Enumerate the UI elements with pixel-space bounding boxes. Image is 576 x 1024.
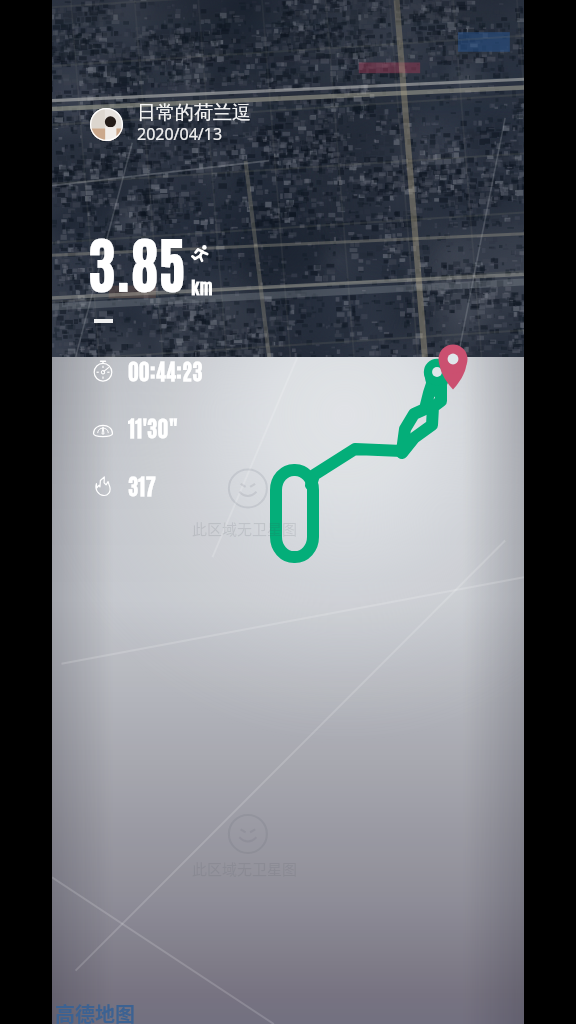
- button[interactable]: Calories: [92, 469, 156, 501]
- staticText: 高德地图: [55, 999, 135, 1024]
- other: Running: [190, 244, 210, 264]
- staticText: km: [191, 274, 213, 297]
- staticText: 00:44:23: [128, 356, 203, 384]
- staticText: 3.85: [88, 223, 186, 299]
- button[interactable]: Pace: [92, 411, 179, 443]
- staticText: 日常的荷兰逗: [137, 101, 251, 125]
- button[interactable]: 日常的荷兰逗: [90, 101, 251, 147]
- staticText: 317: [128, 471, 156, 499]
- staticText: 此区域无卫星图: [192, 858, 298, 880]
- staticText: 2020/04/13: [137, 123, 223, 145]
- staticText: 此区域无卫星图: [192, 518, 298, 540]
- button[interactable]: Duration: [92, 354, 203, 386]
- staticText: 11'30": [128, 413, 179, 441]
